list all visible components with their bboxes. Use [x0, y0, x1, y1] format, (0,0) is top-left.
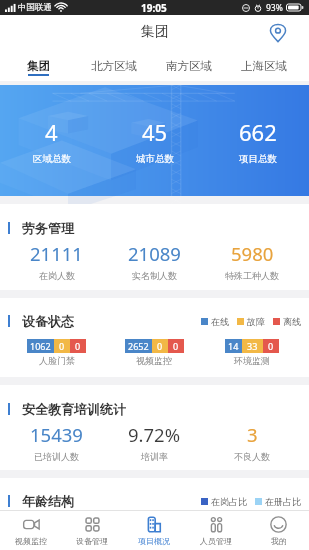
staticText: 人脸门禁: [39, 355, 75, 366]
staticText: 21089: [128, 241, 181, 266]
staticText: 45: [142, 117, 168, 147]
staticText: 项目总数: [239, 153, 277, 165]
staticText: 不良人数: [234, 451, 270, 462]
staticText: 视频监控: [15, 536, 47, 546]
staticText: 662: [239, 117, 277, 147]
staticText: 故障: [247, 316, 265, 327]
staticText: 0: [173, 340, 179, 352]
staticText: 3: [247, 422, 258, 447]
staticText: 特殊工种人数: [225, 270, 279, 281]
staticText: 我的: [271, 536, 287, 546]
staticText: 14: [228, 340, 239, 352]
staticText: 15439: [30, 422, 83, 447]
staticText: 区域总数: [33, 153, 71, 165]
staticText: 93%: [266, 2, 283, 14]
staticText: 0: [75, 340, 81, 352]
staticText: 集团: [141, 23, 169, 41]
button[interactable]: 视频监控: [0, 511, 61, 550]
button[interactable]: 上海区域: [226, 50, 301, 81]
staticText: 南方区域: [166, 59, 212, 73]
button[interactable]: 设备管理: [61, 511, 123, 550]
staticText: 9.72%: [128, 422, 181, 447]
staticText: 0: [268, 340, 274, 352]
staticText: 离线: [283, 316, 301, 327]
staticText: 项目概况: [138, 536, 170, 546]
staticText: 0: [157, 340, 163, 352]
staticText: 城市总数: [136, 153, 174, 165]
button[interactable]: Location: [266, 21, 290, 45]
staticText: 劳务管理: [22, 220, 74, 236]
staticText: 已培训人数: [34, 451, 79, 462]
button[interactable]: 我的: [247, 511, 309, 550]
staticText: 安全教育培训统计: [22, 401, 126, 417]
staticText: 2652: [128, 340, 149, 352]
staticText: 33: [247, 340, 258, 352]
staticText: 4: [45, 117, 58, 147]
staticText: 北方区域: [91, 59, 137, 73]
staticText: 在线: [211, 316, 229, 327]
staticText: 19:05: [141, 1, 167, 15]
staticText: 0: [59, 340, 65, 352]
staticText: 1062: [30, 340, 51, 352]
staticText: 5980: [231, 241, 274, 266]
staticText: 在册占比: [265, 496, 301, 507]
button[interactable]: 北方区域: [76, 50, 151, 81]
staticText: 21111: [30, 241, 83, 266]
staticText: 设备管理: [76, 536, 108, 546]
button[interactable]: 人员管理: [185, 511, 247, 550]
staticText: 年龄结构: [22, 493, 74, 509]
staticText: 设备状态: [22, 313, 74, 329]
staticText: 人员管理: [200, 536, 232, 546]
button[interactable]: 集团: [0, 50, 76, 81]
staticText: 环境监测: [234, 355, 270, 366]
staticText: 在岗人数: [39, 270, 75, 281]
button[interactable]: 南方区域: [151, 50, 226, 81]
staticText: 集团: [27, 59, 50, 73]
staticText: 实名制人数: [132, 270, 177, 281]
staticText: 中国联通: [18, 2, 52, 13]
staticText: 上海区域: [241, 59, 287, 73]
button[interactable]: 项目概况: [123, 511, 185, 550]
staticText: 培训率: [141, 451, 168, 462]
staticText: 在岗占比: [211, 496, 247, 507]
staticText: 视频监控: [136, 355, 172, 366]
